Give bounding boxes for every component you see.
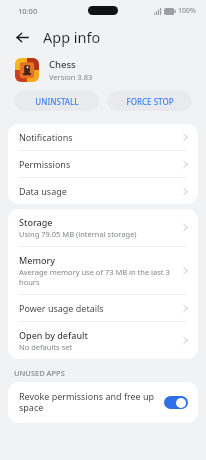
- staticText: No defaults set: [19, 342, 73, 352]
- button[interactable]: Back: [10, 25, 34, 49]
- button[interactable]: Storage: [8, 209, 198, 247]
- button[interactable]: Memory: [8, 247, 198, 295]
- staticText: 10:00: [18, 6, 38, 16]
- staticText: Memory: [19, 254, 56, 266]
- button[interactable]: Data usage: [8, 178, 198, 204]
- staticText: Power usage details: [19, 302, 104, 314]
- staticText: UNUSED APPS: [14, 368, 65, 378]
- staticText: Using 79.05 MB (internal storage): [19, 229, 137, 239]
- staticText: Notifications: [19, 131, 73, 143]
- button[interactable]: UNINSTALL: [14, 91, 99, 111]
- button[interactable]: Permissions: [8, 151, 198, 178]
- staticText: Permissions: [19, 158, 71, 170]
- staticText: Average memory use of 73 MB in the last …: [19, 267, 177, 287]
- staticText: UNINSTALL: [35, 96, 79, 107]
- button[interactable]: Revoke permissions and free up space: [8, 382, 198, 423]
- staticText: App info: [43, 27, 101, 47]
- staticText: Storage: [19, 216, 53, 228]
- button[interactable]: Notifications: [8, 124, 198, 151]
- staticText: Version 3.83: [49, 72, 93, 82]
- staticText: FORCE STOP: [126, 96, 174, 107]
- button[interactable]: Power usage details: [8, 295, 198, 322]
- staticText: Open by default: [19, 329, 88, 341]
- button[interactable]: Open by default: [8, 322, 198, 359]
- staticText: 100%: [178, 6, 196, 16]
- button[interactable]: Revoke permissions toggle: [164, 396, 188, 409]
- staticText: Chess: [49, 58, 76, 71]
- button[interactable]: FORCE STOP: [107, 91, 192, 111]
- staticText: Revoke permissions and free up space: [19, 390, 156, 414]
- staticText: Data usage: [19, 185, 67, 197]
